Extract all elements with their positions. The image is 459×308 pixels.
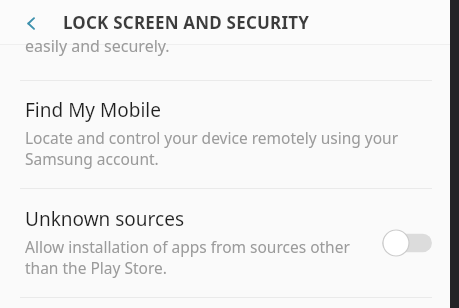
staticText: LOCK SCREEN AND SECURITY bbox=[63, 11, 310, 34]
button[interactable]: Unknown sources bbox=[0, 189, 459, 297]
button[interactable]: Unknown sources toggle, off bbox=[382, 229, 432, 257]
button[interactable]: easily and securely. bbox=[0, 45, 459, 67]
staticText: Allow installation of apps from sources … bbox=[25, 236, 370, 279]
button[interactable]: Navigate up bbox=[13, 4, 51, 42]
staticText: Unknown sources bbox=[25, 206, 184, 232]
staticText: Locate and control your device remotely … bbox=[25, 127, 429, 170]
button[interactable]: Find My Mobile bbox=[0, 81, 459, 188]
staticText: easily and securely. bbox=[25, 35, 170, 57]
staticText: Find My Mobile bbox=[25, 97, 161, 123]
